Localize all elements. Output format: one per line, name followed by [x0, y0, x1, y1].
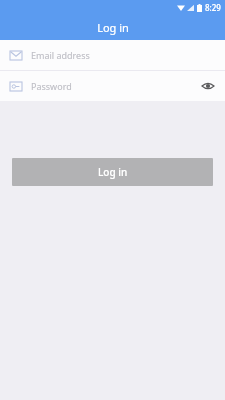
staticText: Email address [31, 49, 216, 61]
button[interactable]: Password [0, 71, 225, 101]
staticText: Log in [98, 165, 128, 179]
staticText: 8:29 [205, 2, 221, 13]
button[interactable]: Log in [12, 158, 213, 186]
button[interactable]: Show password [200, 78, 216, 94]
staticText: Log in [97, 20, 129, 35]
staticText: Password [31, 80, 200, 92]
button[interactable]: Email address [0, 40, 225, 70]
